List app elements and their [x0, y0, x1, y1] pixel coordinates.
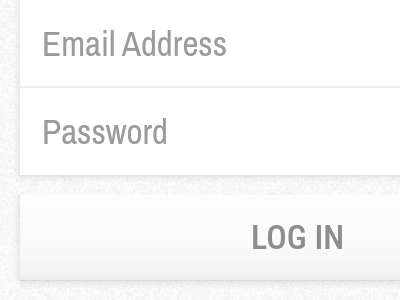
- staticText: LOG IN: [251, 217, 345, 257]
- button[interactable]: LOG IN: [20, 195, 400, 280]
- button[interactable]: Email Address: [20, 0, 400, 86]
- staticText: Password: [42, 108, 169, 155]
- staticText: Email Address: [42, 20, 228, 67]
- button[interactable]: Password: [20, 88, 400, 175]
